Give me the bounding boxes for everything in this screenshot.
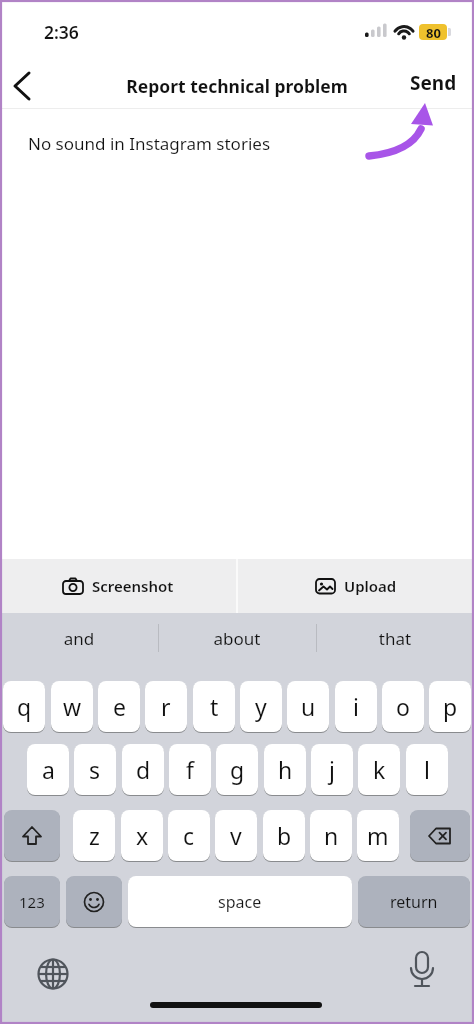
staticText: o <box>396 691 410 722</box>
button[interactable]: u <box>287 681 329 733</box>
staticText: y <box>255 691 267 722</box>
button[interactable]: s <box>74 744 116 796</box>
staticText: h <box>278 754 293 785</box>
staticText: c <box>183 820 195 851</box>
button[interactable]: space <box>128 876 352 928</box>
staticText: r <box>161 691 171 722</box>
button[interactable]: a <box>27 744 69 796</box>
button[interactable]: i <box>335 681 377 733</box>
staticText: z <box>89 820 100 851</box>
button[interactable] <box>66 876 122 928</box>
staticText: m <box>367 820 389 851</box>
staticText: s <box>89 754 101 785</box>
button[interactable]: l <box>406 744 448 796</box>
staticText: f <box>186 754 194 785</box>
staticText: d <box>136 754 151 785</box>
button[interactable]: Send <box>398 66 468 100</box>
staticText: g <box>230 754 245 785</box>
button[interactable] <box>29 950 77 998</box>
staticText: j <box>329 754 335 785</box>
staticText: Report technical problem <box>0 74 474 98</box>
button[interactable]: e <box>98 681 140 733</box>
staticText: u <box>301 691 316 722</box>
staticText: and <box>0 627 158 650</box>
button[interactable]: q <box>3 681 45 733</box>
button[interactable] <box>4 810 60 862</box>
button[interactable]: t <box>193 681 235 733</box>
staticText: b <box>277 820 292 851</box>
button[interactable]: Screenshot <box>0 559 236 613</box>
button[interactable]: w <box>51 681 93 733</box>
button[interactable]: g <box>216 744 258 796</box>
staticText: No sound in Instagram stories <box>28 132 271 155</box>
button[interactable]: 123 <box>4 876 60 928</box>
staticText: space <box>218 891 262 913</box>
staticText: 80 <box>426 24 441 40</box>
staticText: a <box>42 754 55 785</box>
staticText: t <box>210 691 219 722</box>
staticText: x <box>136 820 149 851</box>
button[interactable]: v <box>215 810 257 862</box>
button[interactable]: x <box>121 810 163 862</box>
button[interactable]: k <box>358 744 400 796</box>
button[interactable]: y <box>240 681 282 733</box>
button[interactable]: z <box>73 810 115 862</box>
button[interactable]: d <box>122 744 164 796</box>
staticText: i <box>353 691 359 722</box>
button[interactable]: p <box>429 681 471 733</box>
button[interactable]: j <box>311 744 353 796</box>
staticText: about <box>158 627 316 650</box>
button[interactable] <box>400 950 444 994</box>
staticText: n <box>324 820 339 851</box>
button[interactable] <box>410 810 470 862</box>
button[interactable]: Upload <box>238 559 474 613</box>
staticText: Screenshot <box>92 576 174 596</box>
staticText: e <box>113 691 126 722</box>
button[interactable]: o <box>382 681 424 733</box>
staticText: l <box>424 754 430 785</box>
button[interactable]: h <box>264 744 306 796</box>
button[interactable]: b <box>263 810 305 862</box>
button[interactable]: m <box>357 810 399 862</box>
staticText: q <box>17 691 32 722</box>
staticText: 2:36 <box>44 20 79 44</box>
staticText: k <box>373 754 386 785</box>
button[interactable]: return <box>358 876 470 928</box>
button[interactable]: c <box>168 810 210 862</box>
button[interactable]: f <box>169 744 211 796</box>
staticText: Send <box>410 70 457 96</box>
button[interactable]: n <box>310 810 352 862</box>
staticText: Upload <box>344 576 397 596</box>
staticText: p <box>443 691 458 722</box>
staticText: w <box>63 691 82 722</box>
staticText: return <box>390 891 438 913</box>
staticText: that <box>316 627 474 650</box>
staticText: v <box>230 820 242 851</box>
button[interactable] <box>4 64 44 104</box>
button[interactable]: r <box>145 681 187 733</box>
staticText: 123 <box>19 892 45 912</box>
